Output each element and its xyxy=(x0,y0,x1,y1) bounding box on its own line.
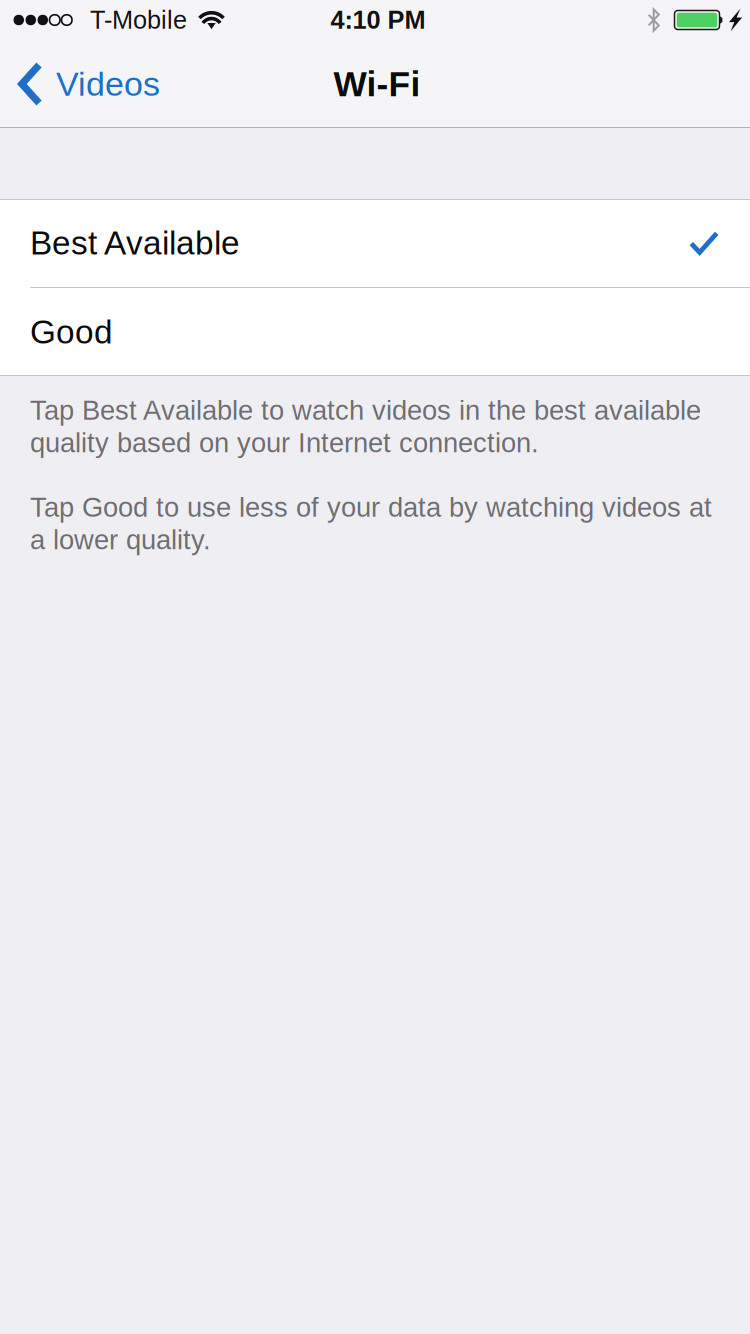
button[interactable]: Best Available xyxy=(0,199,750,287)
staticText: T-Mobile xyxy=(90,6,187,34)
staticText: Videos xyxy=(56,65,160,103)
staticText: 4:10 PM xyxy=(330,6,425,34)
staticText: Tap Best Available to watch videos in th… xyxy=(30,395,701,458)
button[interactable]: Videos xyxy=(0,40,172,128)
staticText: Wi-Fi xyxy=(333,64,420,104)
button[interactable]: Good xyxy=(0,288,750,376)
staticText: Good xyxy=(30,313,113,351)
staticText: Tap Good to use less of your data by wat… xyxy=(30,492,712,555)
staticText: Best Available xyxy=(30,224,240,262)
